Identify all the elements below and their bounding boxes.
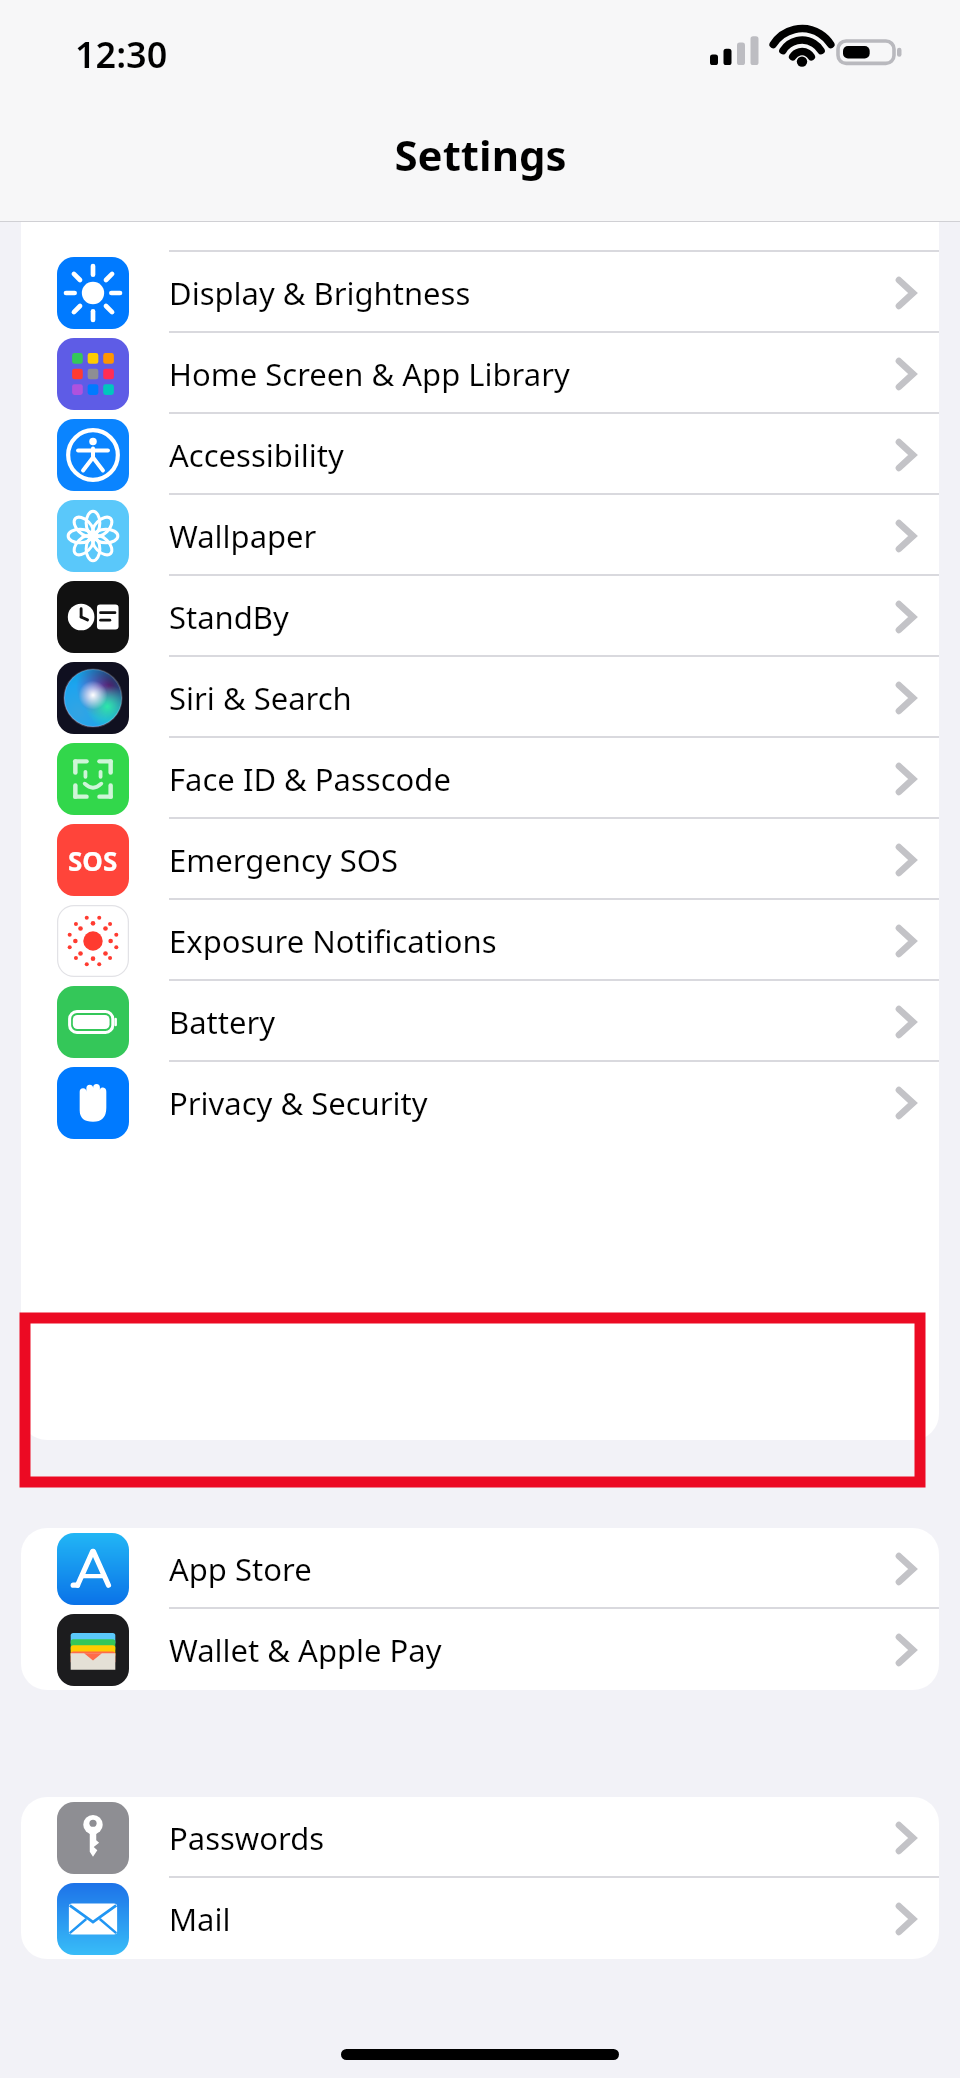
staticText: Home Screen & App Library (169, 353, 895, 395)
button[interactable]: Privacy & Security (21, 1062, 939, 1143)
button[interactable]: Battery (21, 981, 939, 1062)
button[interactable]: Siri & Search (21, 657, 939, 738)
button[interactable]: Face ID & Passcode (21, 738, 939, 819)
staticText: Mail (169, 1898, 895, 1940)
button[interactable]: Mail (21, 1878, 939, 1959)
button[interactable]: StandBy (21, 576, 939, 657)
button[interactable]: SOS (21, 819, 939, 900)
staticText: Emergency SOS (169, 839, 895, 881)
staticText: Display & Brightness (169, 272, 895, 314)
button[interactable]: Wallet & Apple Pay (21, 1609, 939, 1690)
staticText: Passwords (169, 1817, 895, 1859)
button[interactable]: App Store (21, 1528, 939, 1609)
staticText: StandBy (169, 596, 895, 638)
button[interactable]: Exposure Notifications (21, 900, 939, 981)
staticText: Siri & Search (169, 677, 895, 719)
staticText: Privacy & Security (169, 1082, 895, 1124)
staticText: SOS (68, 843, 118, 878)
button[interactable]: Passwords (21, 1797, 939, 1878)
button[interactable]: Home Screen & App Library (21, 333, 939, 414)
staticText: Accessibility (169, 434, 895, 476)
staticText: Settings (394, 126, 567, 183)
staticText: Wallpaper (169, 515, 895, 557)
staticText: 12:30 (75, 30, 168, 79)
staticText: Face ID & Passcode (169, 758, 895, 800)
button[interactable]: Accessibility (21, 414, 939, 495)
staticText: Wallet & Apple Pay (169, 1629, 895, 1671)
button[interactable]: Display & Brightness (21, 252, 939, 333)
staticText: Exposure Notifications (169, 920, 895, 962)
button[interactable]: Wallpaper (21, 495, 939, 576)
staticText: Battery (169, 1001, 895, 1043)
staticText: App Store (169, 1548, 895, 1590)
